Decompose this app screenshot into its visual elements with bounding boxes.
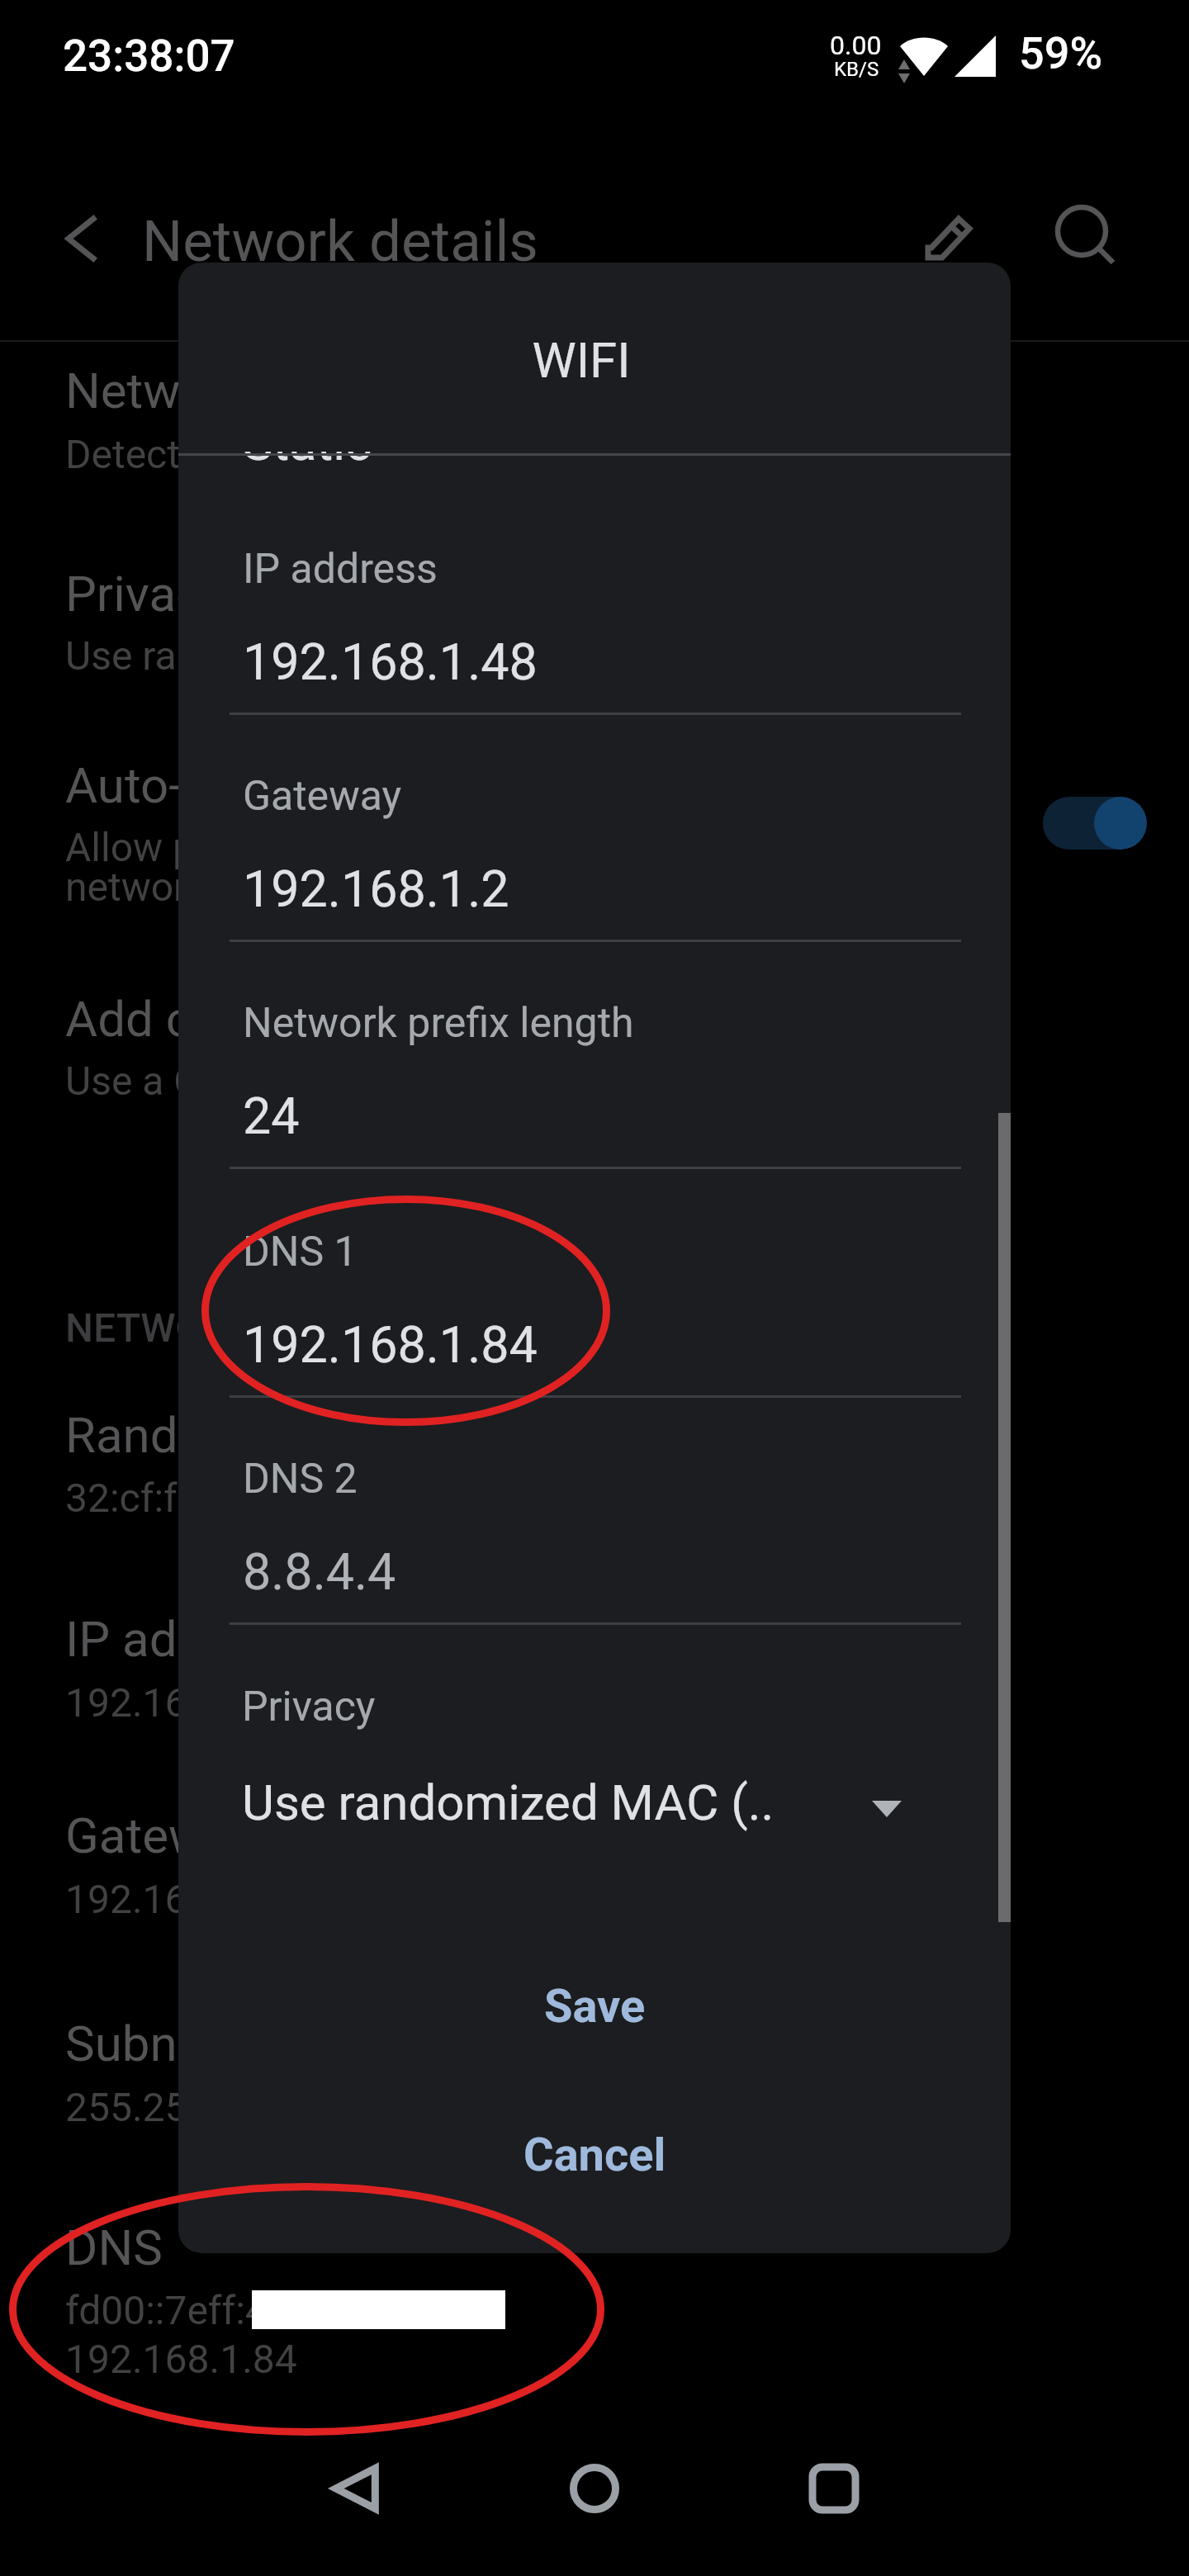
staticText: DNS 2 xyxy=(243,1455,358,1503)
staticText: Use ra xyxy=(65,632,177,679)
button[interactable]: Home xyxy=(549,2443,640,2534)
button[interactable]: Back xyxy=(310,2443,400,2534)
staticText: 32:cf:f xyxy=(65,1475,178,1521)
staticText: 192.16 xyxy=(65,1679,187,1726)
staticText: 23:38:07 xyxy=(63,31,235,82)
button[interactable]: Subnet mask xyxy=(0,1977,1189,2180)
staticText: 192.168.1.84 xyxy=(65,2336,297,2382)
button[interactable]: Search xyxy=(1040,190,1131,281)
staticText: 8.8.4.4 xyxy=(243,1542,396,1601)
staticText: Privacy xyxy=(65,565,225,623)
staticText: Gateway xyxy=(243,772,402,821)
button[interactable]: Privacy xyxy=(0,533,1189,727)
staticText: Gatew xyxy=(65,1807,206,1864)
staticText: 192.168.1.84 xyxy=(243,1315,538,1374)
button[interactable]: Edit xyxy=(905,192,996,282)
staticText: Rand xyxy=(65,1406,178,1464)
button[interactable]: Network prefix length xyxy=(230,974,961,1169)
staticText: NETWO xyxy=(65,1305,203,1351)
staticText: Allow p xyxy=(65,824,195,870)
staticText: IP address xyxy=(243,545,438,594)
button[interactable]: Save xyxy=(178,1940,1011,2072)
staticText: DNS xyxy=(65,2218,163,2276)
staticText: 59% xyxy=(1019,27,1103,79)
button[interactable]: Auto-connect toggle xyxy=(1043,797,1147,850)
staticText: networ xyxy=(65,864,187,910)
staticText: Subn xyxy=(65,2015,178,2072)
button[interactable]: Network xyxy=(0,342,1189,533)
staticText: Network details xyxy=(142,208,538,275)
staticText: Detected xyxy=(65,431,224,477)
staticText: Add c xyxy=(65,990,192,1048)
staticText: Privacy xyxy=(242,1683,376,1731)
button[interactable]: Cancel xyxy=(178,2089,1011,2221)
staticText: Network prefix length xyxy=(243,999,634,1048)
staticText: Network xyxy=(65,362,251,419)
button[interactable]: Gateway xyxy=(230,747,961,942)
staticText: 192.168.1.48 xyxy=(243,632,538,691)
staticText: IP ad xyxy=(65,1610,178,1668)
staticText: WIFI xyxy=(178,331,997,389)
staticText: KB/S xyxy=(834,58,879,81)
staticText: Save xyxy=(544,1979,646,2034)
button[interactable]: Privacy xyxy=(230,1661,961,1843)
staticText: DNS 1 xyxy=(243,1228,358,1276)
staticText: Use randomized MAC (.. xyxy=(242,1773,775,1831)
staticText: Auto- xyxy=(65,756,182,814)
staticText: Use a C xyxy=(65,1058,200,1104)
staticText: 255.25 xyxy=(65,2084,187,2130)
staticText: 24 xyxy=(243,1087,300,1145)
button[interactable]: Back xyxy=(38,193,129,284)
button[interactable]: Recents xyxy=(789,2443,879,2534)
staticText: fd00::7eff:4 xyxy=(65,2287,268,2333)
button[interactable]: Gateway xyxy=(0,1771,1189,1977)
staticText: 0.00 xyxy=(830,30,882,61)
staticText: Static xyxy=(243,452,372,471)
button[interactable]: DNS xyxy=(0,2180,1189,2394)
button[interactable]: DNS 1 xyxy=(230,1203,961,1398)
staticText: 192.168.1.2 xyxy=(243,859,509,918)
button[interactable]: Auto-connect xyxy=(0,727,1189,958)
staticText: 192.16 xyxy=(65,1876,187,1922)
staticText: Cancel xyxy=(523,2128,666,2182)
button[interactable]: IP address xyxy=(230,520,961,715)
button[interactable]: DNS 2 xyxy=(230,1430,961,1625)
button[interactable]: Randomized MAC xyxy=(0,1371,1189,1573)
button[interactable]: Add device xyxy=(0,958,1189,1156)
button[interactable]: IP address xyxy=(0,1573,1189,1771)
